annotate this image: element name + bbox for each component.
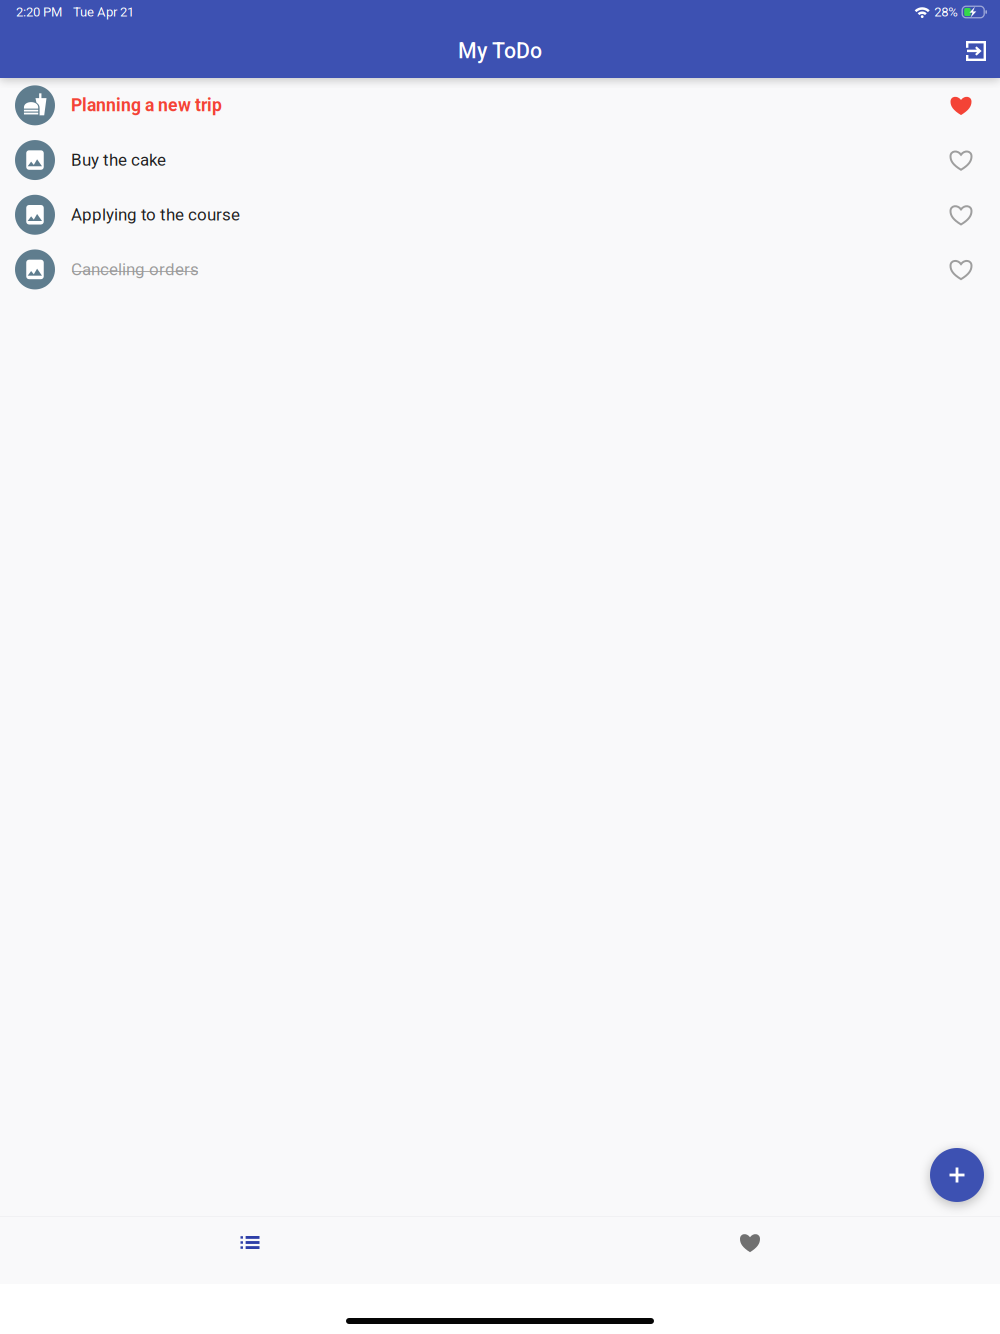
button[interactable]: Planning a new trip — [0, 78, 922, 133]
staticText: Buy the cake — [71, 150, 166, 170]
button[interactable]: Mark favorite — [922, 133, 1000, 187]
button[interactable]: Applying to the course — [0, 187, 922, 242]
button[interactable]: Mark favorite — [922, 242, 1000, 297]
staticText: Applying to the course — [71, 205, 240, 225]
button[interactable]: Favorites — [500, 1217, 1000, 1284]
button[interactable]: Unmark favorite — [922, 78, 1000, 133]
staticText: Planning a new trip — [71, 95, 222, 116]
button[interactable]: Add task — [930, 1148, 984, 1202]
staticText: 28% — [934, 4, 958, 20]
staticText: Canceling orders — [71, 259, 199, 279]
button[interactable]: Tasks — [0, 1217, 500, 1284]
button[interactable]: Mark favorite — [922, 187, 1000, 242]
staticText: Tue Apr 21 — [73, 4, 134, 20]
button[interactable]: Buy the cake — [0, 133, 922, 187]
button[interactable]: Canceling orders — [0, 242, 922, 297]
staticText: 2:20 PM — [16, 4, 62, 20]
button[interactable]: Log out — [952, 27, 1000, 75]
staticText: My ToDo — [458, 38, 542, 63]
